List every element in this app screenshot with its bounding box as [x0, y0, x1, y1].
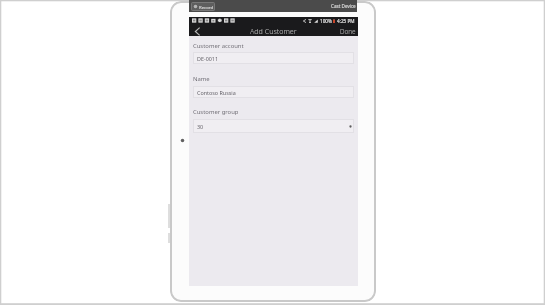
staticText: 4:25 PM	[337, 18, 355, 24]
staticText: Name	[193, 75, 210, 83]
button[interactable]: Cast Device	[331, 3, 356, 9]
staticText: DE-0011	[197, 55, 219, 62]
staticText: Add Customer	[250, 26, 297, 36]
staticText: Contoso Russia	[197, 89, 236, 96]
staticText: Customer account	[193, 42, 244, 50]
button[interactable]: Contoso Russia	[193, 86, 354, 98]
button[interactable]: Record	[191, 2, 215, 11]
staticText: Customer group	[193, 108, 239, 116]
staticText: Record	[199, 4, 214, 10]
button[interactable]: Done	[340, 24, 356, 36]
staticText: Cast Device	[331, 3, 356, 9]
button[interactable]: Back	[189, 24, 205, 36]
staticText: 30	[197, 123, 204, 130]
staticText: 100%	[320, 18, 332, 24]
button[interactable]: 30	[193, 119, 354, 133]
staticText: Done	[340, 27, 356, 36]
button[interactable]: DE-0011	[193, 52, 354, 64]
